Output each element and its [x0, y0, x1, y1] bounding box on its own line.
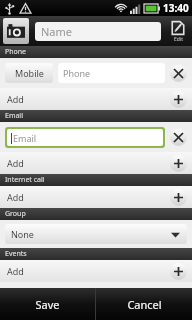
- staticText: Events: [5, 249, 27, 259]
- button[interactable]: Add: [170, 263, 187, 280]
- button[interactable]: Add: [170, 91, 187, 108]
- staticText: Add: [7, 265, 24, 277]
- button[interactable]: Save: [0, 288, 95, 320]
- button[interactable]: Add photo: [3, 18, 29, 44]
- staticText: Edit: [174, 36, 183, 43]
- button[interactable]: Name: [35, 22, 161, 41]
- staticText: Save: [35, 297, 60, 312]
- staticText: Email: [5, 111, 23, 121]
- staticText: Add: [7, 93, 24, 105]
- button[interactable]: Add: [0, 88, 192, 110]
- button[interactable]: None: [5, 224, 187, 244]
- staticText: Phone: [63, 67, 91, 79]
- staticText: Mobile: [15, 67, 44, 79]
- button[interactable]: Remove: [170, 65, 187, 82]
- button[interactable]: Edit: [166, 16, 190, 46]
- button[interactable]: Cancel: [96, 288, 192, 320]
- staticText: Cancel: [127, 297, 162, 312]
- button[interactable]: Remove: [170, 129, 187, 146]
- button[interactable]: Add: [170, 155, 187, 172]
- staticText: Internet call: [5, 175, 45, 185]
- staticText: Name: [41, 24, 73, 39]
- staticText: Group: [5, 209, 26, 219]
- staticText: None: [11, 228, 34, 240]
- button[interactable]: Phone: [58, 63, 165, 83]
- staticText: Add: [7, 157, 24, 169]
- staticText: Email: [13, 132, 37, 144]
- staticText: Phone: [5, 47, 27, 57]
- button[interactable]: Add: [0, 152, 192, 174]
- staticText: Add: [7, 191, 24, 203]
- button[interactable]: Email: [7, 129, 163, 146]
- button[interactable]: Mobile: [5, 63, 53, 83]
- button[interactable]: Add: [170, 189, 187, 206]
- button[interactable]: Add: [0, 260, 192, 282]
- button[interactable]: Add: [0, 186, 192, 208]
- staticText: 13:40: [163, 1, 189, 15]
